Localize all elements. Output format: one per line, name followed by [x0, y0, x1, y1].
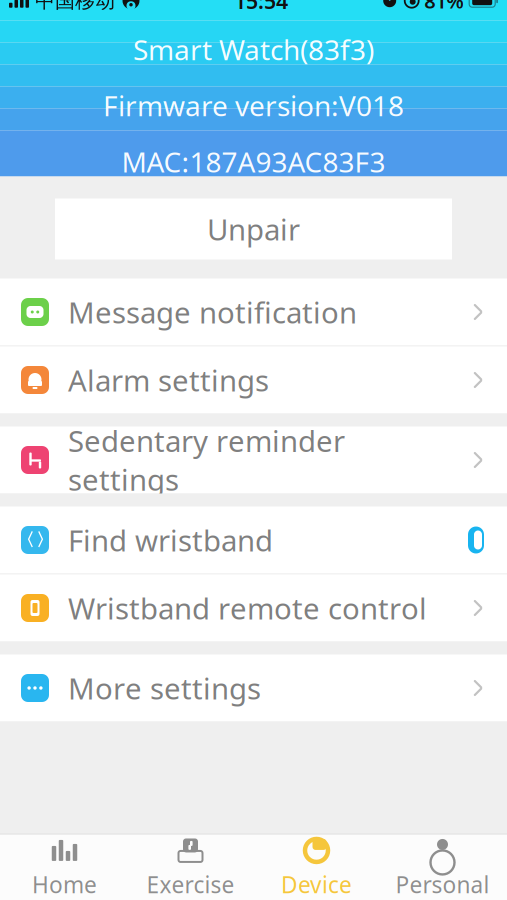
- staticText: Message notification: [68, 292, 357, 331]
- button[interactable]: Message notification: [0, 278, 507, 345]
- staticText: Find wristband: [68, 520, 273, 559]
- staticText: 81%: [424, 0, 464, 14]
- staticText: Smart Watch(83f3): [133, 31, 374, 68]
- staticText: 15:54: [234, 0, 288, 15]
- staticText: Firmware version:V018: [103, 87, 404, 124]
- staticText: Personal: [395, 869, 489, 899]
- button[interactable]: Sedentary reminder settings: [0, 426, 507, 493]
- button[interactable]: Wristband remote control: [0, 574, 507, 641]
- button[interactable]: Device: [253, 834, 379, 900]
- button[interactable]: Personal: [379, 834, 505, 900]
- button[interactable]: 〈: [0, 506, 507, 573]
- staticText: Device: [281, 869, 352, 899]
- staticText: Home: [32, 869, 97, 899]
- staticText: 中国移动: [35, 0, 115, 13]
- staticText: Wristband remote control: [68, 588, 427, 627]
- staticText: More settings: [68, 668, 261, 707]
- button[interactable]: Exercise: [127, 834, 253, 900]
- staticText: Unpair: [207, 209, 300, 248]
- button[interactable]: Alarm settings: [0, 346, 507, 413]
- staticText: Sedentary reminder settings: [68, 421, 345, 499]
- staticText: Alarm settings: [68, 360, 269, 399]
- staticText: Exercise: [146, 869, 234, 899]
- staticText: 〈: [17, 529, 34, 551]
- button[interactable]: Home: [1, 834, 127, 900]
- staticText: 〉: [36, 529, 53, 551]
- button[interactable]: Unpair: [55, 198, 452, 259]
- button[interactable]: More settings: [0, 654, 507, 721]
- staticText: MAC:187A93AC83F3: [121, 143, 385, 180]
